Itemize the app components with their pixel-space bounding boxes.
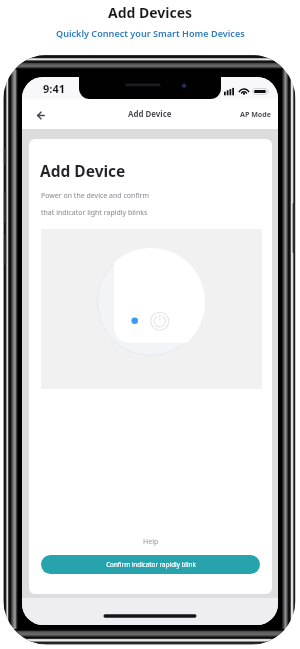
staticText: Add Devices [108,3,193,22]
staticText: 9:41 [43,81,65,96]
button[interactable]: Back [30,103,52,125]
staticText: Quickly Connect your Smart Home Devices [56,27,245,39]
staticText: Add Device [128,109,172,120]
staticText: Add Device [40,160,126,181]
staticText: that indicator light rapidly blinks [41,208,148,218]
button[interactable]: Confirm indicator rapidly blink [41,555,260,574]
button[interactable]: Help [131,533,171,551]
staticText: Confirm indicator rapidly blink [106,560,196,569]
staticText: Power on the device and confirm [41,191,150,201]
staticText: Help [143,537,159,547]
button[interactable]: AP Mode [230,102,278,126]
staticText: AP Mode [240,109,271,119]
